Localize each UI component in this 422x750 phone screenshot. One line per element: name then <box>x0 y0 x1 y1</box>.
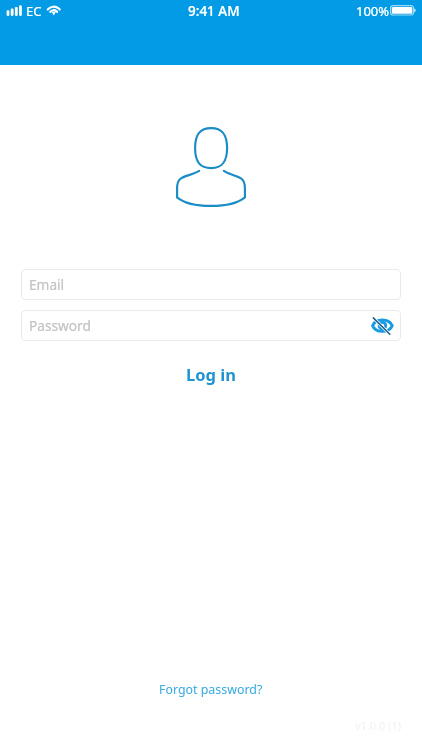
button[interactable]: Forgot password? <box>0 681 422 698</box>
button[interactable]: Password <box>21 310 401 341</box>
staticText: Email <box>29 275 65 294</box>
staticText: 100% <box>356 2 390 20</box>
button[interactable]: Email <box>21 269 401 300</box>
button[interactable]: Log in <box>0 363 422 385</box>
staticText: 9:41 AM <box>188 2 240 20</box>
staticText: EC <box>26 2 42 20</box>
button[interactable]: Show password <box>369 313 395 339</box>
staticText: Password <box>29 316 91 335</box>
staticText: Log in <box>186 363 236 385</box>
staticText: v1.0.0 (1) <box>355 718 402 733</box>
staticText: Forgot password? <box>159 681 263 698</box>
